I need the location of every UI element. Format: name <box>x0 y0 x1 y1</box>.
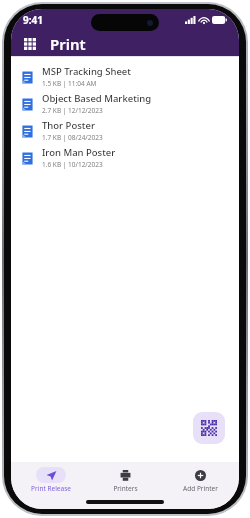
button[interactable]: Printers <box>90 465 160 495</box>
staticText: Print Release <box>31 484 71 493</box>
staticText: 1.5 KB | 11:04 AM <box>42 79 97 88</box>
button[interactable]: Add Printer <box>165 465 235 495</box>
button[interactable]: MSP Tracking Sheet <box>11 63 239 90</box>
button[interactable]: Thor Poster <box>11 117 239 144</box>
staticText: 2.7 KB | 12/12/2023 <box>42 106 103 115</box>
staticText: 9:41 <box>23 13 43 27</box>
staticText: Object Based Marketing <box>42 92 152 105</box>
button[interactable]: Print Release <box>16 465 86 495</box>
button[interactable]: Apps menu <box>18 32 42 56</box>
staticText: Print <box>50 34 86 54</box>
staticText: Printers <box>113 484 138 493</box>
button[interactable]: Object Based Marketing <box>11 90 239 117</box>
staticText: 1.7 KB | 08/24/2023 <box>42 133 103 142</box>
staticText: Iron Man Poster <box>42 146 116 159</box>
staticText: Thor Poster <box>42 119 95 132</box>
button[interactable]: Iron Man Poster <box>11 144 239 171</box>
staticText: MSP Tracking Sheet <box>42 65 131 78</box>
staticText: 1.6 KB | 10/12/2023 <box>42 160 103 169</box>
staticText: Add Printer <box>183 484 218 493</box>
button[interactable]: Scan QR code <box>193 412 225 444</box>
